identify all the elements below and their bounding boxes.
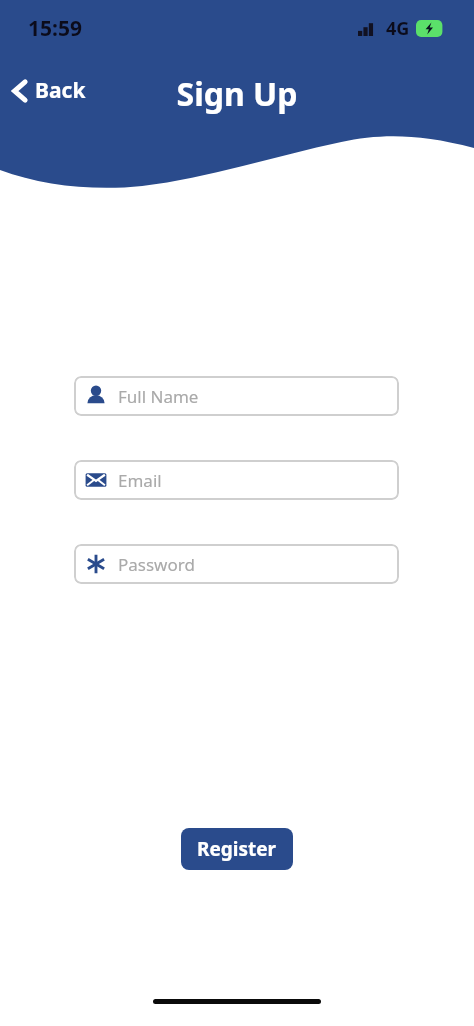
staticText: Password (118, 553, 195, 576)
staticText: Email (118, 469, 162, 492)
staticText: 15:59 (28, 14, 82, 43)
button[interactable]: Email (74, 460, 399, 500)
staticText: Sign Up (0, 72, 474, 116)
button[interactable]: Back (4, 70, 94, 111)
button[interactable]: Full Name (74, 376, 399, 416)
button[interactable]: Register (181, 828, 293, 870)
staticText: 4G (386, 16, 410, 41)
staticText: Register (197, 836, 277, 862)
staticText: Back (35, 76, 86, 105)
staticText: Full Name (118, 385, 199, 408)
button[interactable]: Password (74, 544, 399, 584)
